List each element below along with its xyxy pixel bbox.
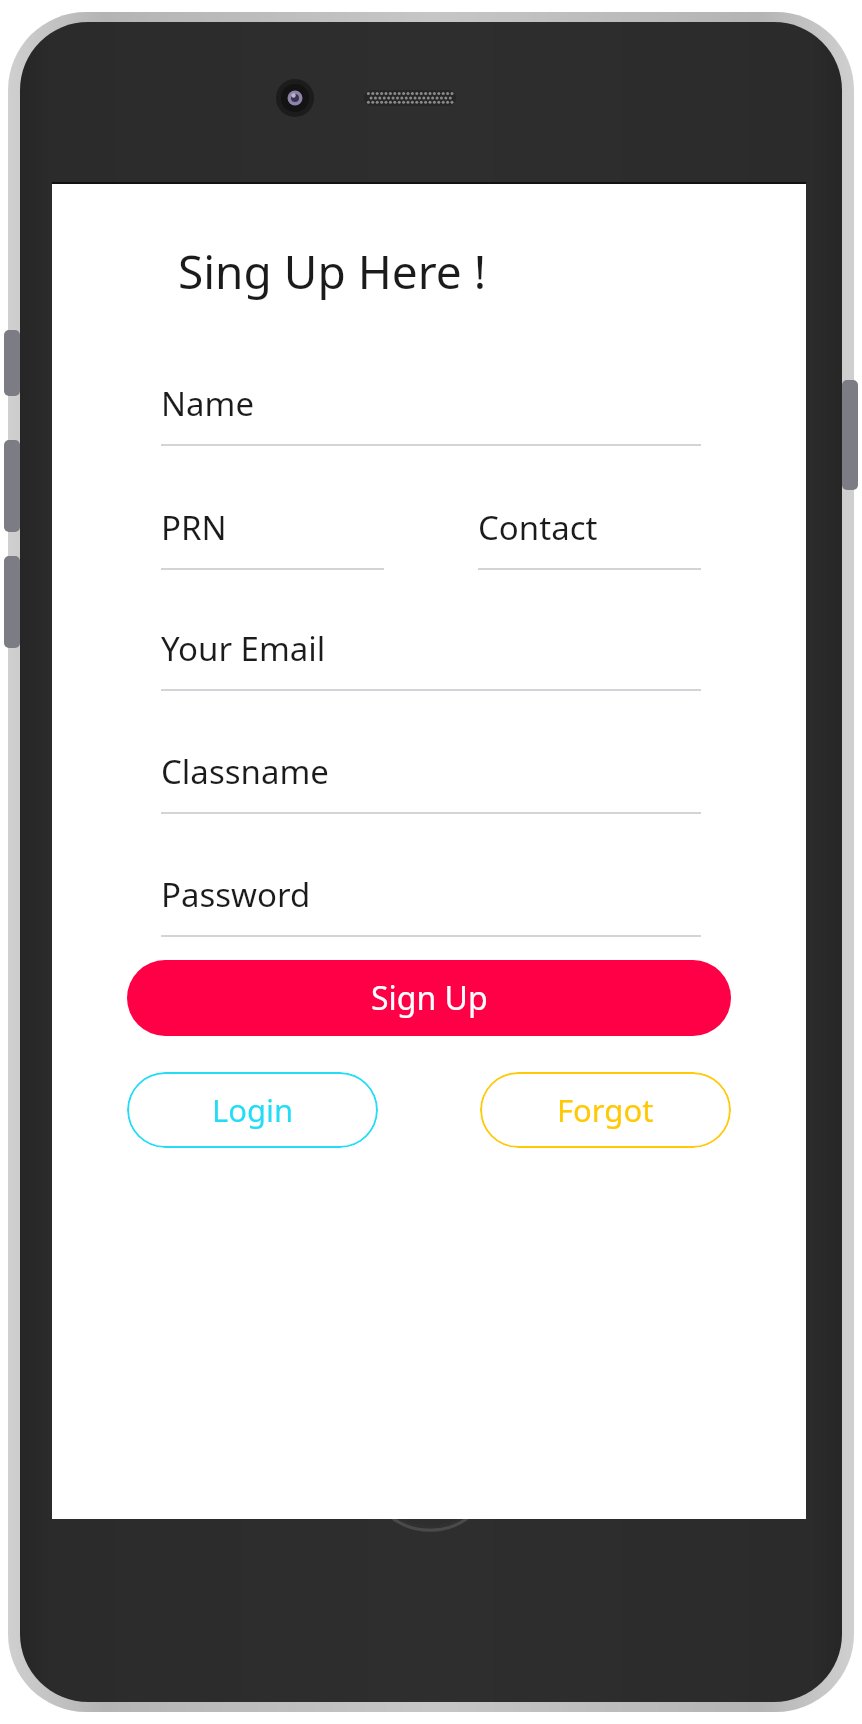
button[interactable]: PRN	[161, 505, 384, 570]
button[interactable]: Password	[161, 872, 701, 937]
staticText: Sign Up	[371, 976, 488, 1020]
staticText: Password	[161, 872, 311, 917]
staticText: Your Email	[161, 626, 326, 671]
staticText: PRN	[161, 505, 227, 550]
staticText: Classname	[161, 749, 329, 794]
button[interactable]: Sign Up	[127, 960, 731, 1036]
button[interactable]: Your Email	[161, 626, 701, 691]
button[interactable]: Forgot	[480, 1072, 731, 1148]
staticText: Name	[161, 381, 255, 426]
staticText: Contact	[478, 505, 598, 550]
staticText: Login	[212, 1089, 294, 1131]
button[interactable]: Classname	[161, 749, 701, 814]
staticText: Sing Up Here !	[178, 240, 487, 303]
button[interactable]: Login	[127, 1072, 378, 1148]
staticText: Forgot	[557, 1089, 654, 1131]
button[interactable]: Contact	[478, 505, 701, 570]
button[interactable]: Name	[161, 381, 701, 446]
